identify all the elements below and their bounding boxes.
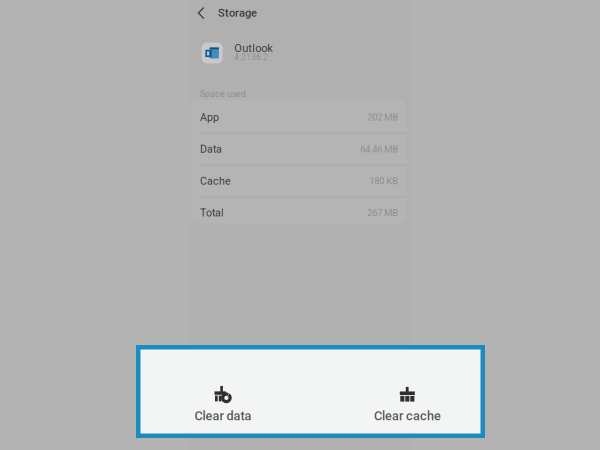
button[interactable]: Total: [189, 197, 407, 228]
staticText: Clear data: [194, 409, 251, 423]
staticText: 202 MB: [367, 112, 398, 123]
staticText: Clear cache: [374, 409, 441, 423]
button[interactable]: Back: [189, 0, 213, 25]
staticText: Storage: [218, 6, 257, 19]
button[interactable]: Clear cache: [352, 369, 462, 439]
staticText: Cache: [200, 175, 231, 187]
staticText: Total: [200, 206, 224, 219]
button[interactable]: Data: [189, 134, 407, 165]
staticText: Space used: [200, 89, 246, 99]
staticText: 267 MB: [367, 207, 398, 218]
button[interactable]: Clear data: [168, 369, 278, 439]
button[interactable]: Cache: [189, 166, 407, 196]
staticText: App: [200, 111, 219, 124]
staticText: Outlook: [234, 42, 273, 55]
staticText: Data: [200, 143, 222, 155]
button[interactable]: App: [189, 102, 407, 133]
staticText: 180 KB: [369, 175, 398, 186]
staticText: 64.46 MB: [360, 144, 398, 155]
staticText: 4.2136.2: [234, 53, 268, 62]
